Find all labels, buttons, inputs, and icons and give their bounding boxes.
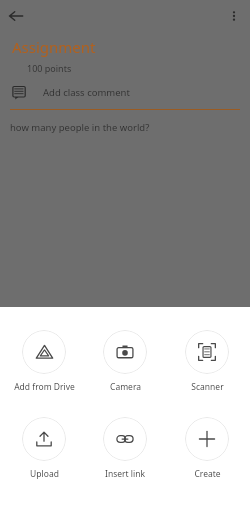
button[interactable]: Insert link — [87, 416, 163, 481]
staticText: Assignment — [12, 37, 96, 57]
button[interactable]: Back — [0, 0, 32, 32]
staticText: Create — [194, 468, 221, 480]
button[interactable]: Scanner — [169, 329, 245, 394]
staticText: Upload — [30, 468, 59, 480]
staticText: 100 points — [27, 62, 72, 74]
button[interactable]: Upload — [6, 416, 82, 481]
staticText: Scanner — [191, 381, 224, 393]
button[interactable]: More options — [218, 0, 250, 32]
staticText: Camera — [110, 381, 141, 393]
staticText: how many people in the world? — [10, 121, 150, 134]
button[interactable]: Add from Drive — [6, 329, 82, 394]
staticText: Add from Drive — [14, 381, 75, 393]
button[interactable]: Add class comment — [0, 83, 250, 102]
button[interactable]: Create — [169, 416, 245, 481]
button[interactable]: Camera — [87, 329, 163, 394]
staticText: Add class comment — [43, 86, 130, 99]
staticText: Insert link — [105, 468, 145, 480]
